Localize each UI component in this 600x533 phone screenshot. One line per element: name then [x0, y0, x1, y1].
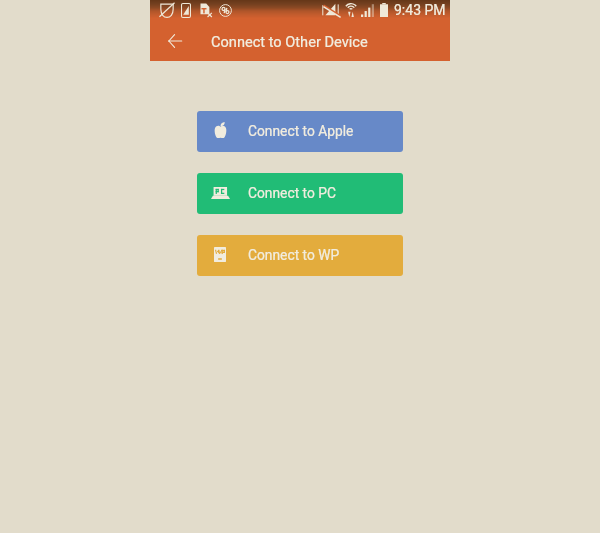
staticText: Connect to WP — [248, 247, 340, 263]
button[interactable]: Connect to PC — [197, 173, 403, 214]
staticText: Connect to PC — [248, 185, 336, 201]
button[interactable]: Connect to Apple — [197, 111, 403, 152]
button[interactable]: Connect to WP — [197, 235, 403, 276]
staticText: 9:43 PM — [394, 2, 446, 18]
staticText: Connect to Other Device — [211, 33, 368, 50]
button[interactable]: Back — [156, 24, 194, 61]
staticText: Connect to Apple — [248, 123, 354, 139]
